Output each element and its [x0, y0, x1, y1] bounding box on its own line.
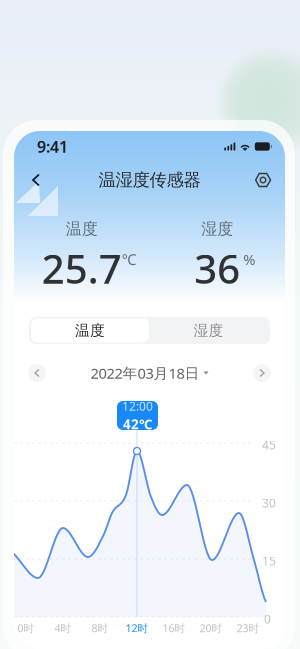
staticText: 23时 — [236, 621, 259, 635]
staticText: 20时 — [199, 621, 222, 635]
button[interactable]: Next day — [253, 364, 271, 382]
staticText: 9:41 — [37, 136, 68, 157]
button[interactable]: 温度 — [31, 318, 149, 342]
button[interactable]: 湿度 — [149, 318, 268, 342]
staticText: 15 — [262, 553, 276, 569]
staticText: 温湿度传感器 — [98, 169, 200, 191]
staticText: 45 — [262, 437, 276, 453]
staticText: % — [243, 249, 255, 269]
staticText: 16时 — [162, 621, 185, 635]
staticText: 湿度 — [193, 321, 223, 339]
staticText: 湿度 — [201, 219, 233, 239]
button[interactable]: Settings — [250, 167, 276, 193]
staticText: 温度 — [66, 219, 98, 239]
button[interactable]: Previous day — [28, 364, 46, 382]
staticText: ℃ — [122, 249, 137, 269]
button[interactable]: Back — [23, 167, 49, 193]
staticText: 4时 — [54, 621, 71, 635]
staticText: 12时 — [125, 621, 148, 635]
staticText: 2022年03月18日 — [90, 363, 199, 383]
staticText: 0时 — [17, 621, 34, 635]
staticText: 25.7 — [42, 242, 122, 295]
staticText: 42℃ — [123, 415, 152, 433]
staticText: 0 — [264, 611, 271, 627]
staticText: 温度 — [75, 321, 105, 339]
staticText: 36 — [194, 242, 240, 295]
staticText: 12:00 — [122, 398, 153, 414]
button[interactable]: 2022年03月18日 — [90, 363, 208, 383]
staticText: 8时 — [91, 621, 108, 635]
staticText: 30 — [262, 495, 276, 511]
